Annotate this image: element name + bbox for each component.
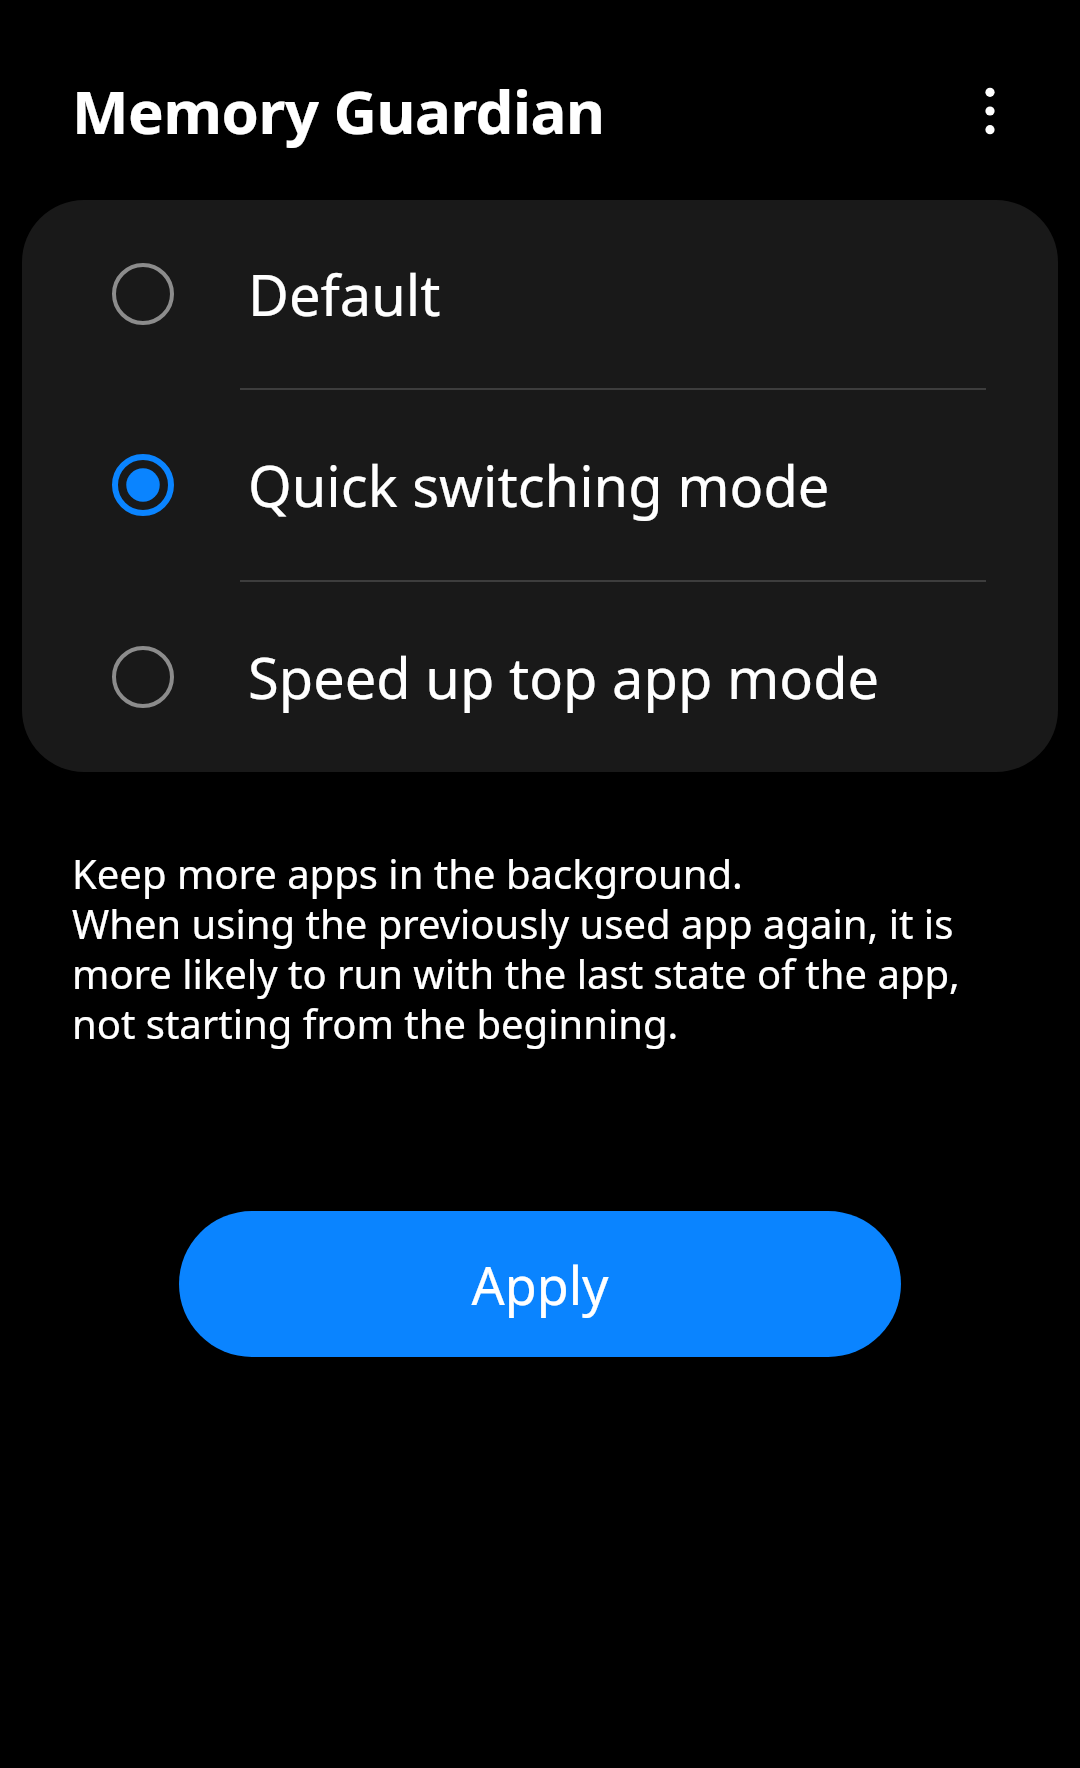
staticText: Default xyxy=(248,256,441,332)
button[interactable]: More options xyxy=(942,63,1038,159)
button[interactable]: Speed up top app mode xyxy=(22,582,1058,772)
button[interactable]: Default xyxy=(22,200,1058,388)
button[interactable]: Apply xyxy=(179,1211,901,1357)
button[interactable]: Quick switching mode xyxy=(22,390,1058,580)
staticText: Apply xyxy=(471,1249,609,1320)
staticText: Quick switching mode xyxy=(248,447,830,523)
staticText: Speed up top app mode xyxy=(248,639,880,715)
staticText: Keep more apps in the background. When u… xyxy=(72,846,960,1051)
staticText: Memory Guardian xyxy=(72,70,605,152)
